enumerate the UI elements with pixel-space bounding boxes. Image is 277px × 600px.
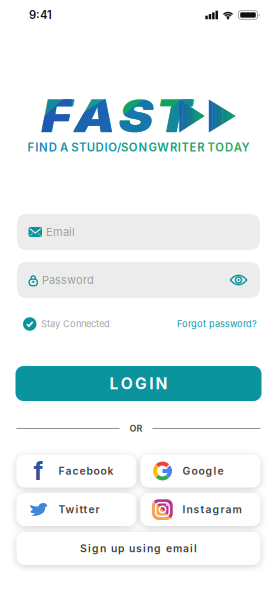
staticText: 9:41	[29, 8, 52, 22]
button[interactable]: Google	[140, 454, 260, 487]
button[interactable]: Stay Connected	[23, 317, 110, 331]
staticText: Facebook	[58, 465, 113, 477]
staticText: I	[149, 374, 153, 393]
staticText: A	[69, 89, 105, 143]
staticText: A	[69, 89, 105, 143]
staticText: S	[107, 89, 137, 143]
textField[interactable]: Email	[46, 225, 248, 239]
staticText: Twitter	[58, 503, 99, 516]
staticText: FIND	[27, 141, 57, 154]
staticText: G	[135, 374, 147, 393]
staticText: STUDIO/	[71, 141, 121, 154]
staticText: T	[139, 89, 170, 143]
secureTextField[interactable]: Password	[42, 273, 225, 287]
staticText: f	[33, 456, 43, 486]
button[interactable]: Show password	[229, 273, 248, 287]
staticText: O	[121, 374, 133, 393]
staticText: OR	[129, 423, 142, 434]
staticText: T	[139, 89, 170, 143]
button[interactable]: Forgot password?	[177, 318, 257, 329]
staticText: Stay Connected	[41, 318, 110, 329]
staticText: F	[41, 89, 67, 143]
staticText: Instagram	[182, 503, 241, 516]
staticText: Email	[46, 225, 75, 239]
button[interactable]: f	[16, 454, 136, 487]
staticText: Forgot password?	[177, 318, 257, 329]
staticText: TODAY	[207, 141, 250, 154]
button[interactable]: LOGIN	[15, 366, 261, 401]
button[interactable]: Twitter	[16, 493, 136, 526]
staticText: F	[41, 89, 67, 143]
staticText: SONGWRITER	[121, 141, 204, 154]
staticText: Password	[42, 273, 94, 287]
staticText: N	[156, 374, 168, 393]
button[interactable]: Sign up using email	[16, 532, 260, 565]
staticText: A	[60, 141, 68, 154]
staticText: L	[109, 374, 118, 393]
staticText: Google	[182, 465, 223, 477]
staticText: Sign up using email	[80, 542, 197, 555]
staticText: S	[107, 89, 137, 143]
button[interactable]: Instagram	[140, 493, 260, 526]
